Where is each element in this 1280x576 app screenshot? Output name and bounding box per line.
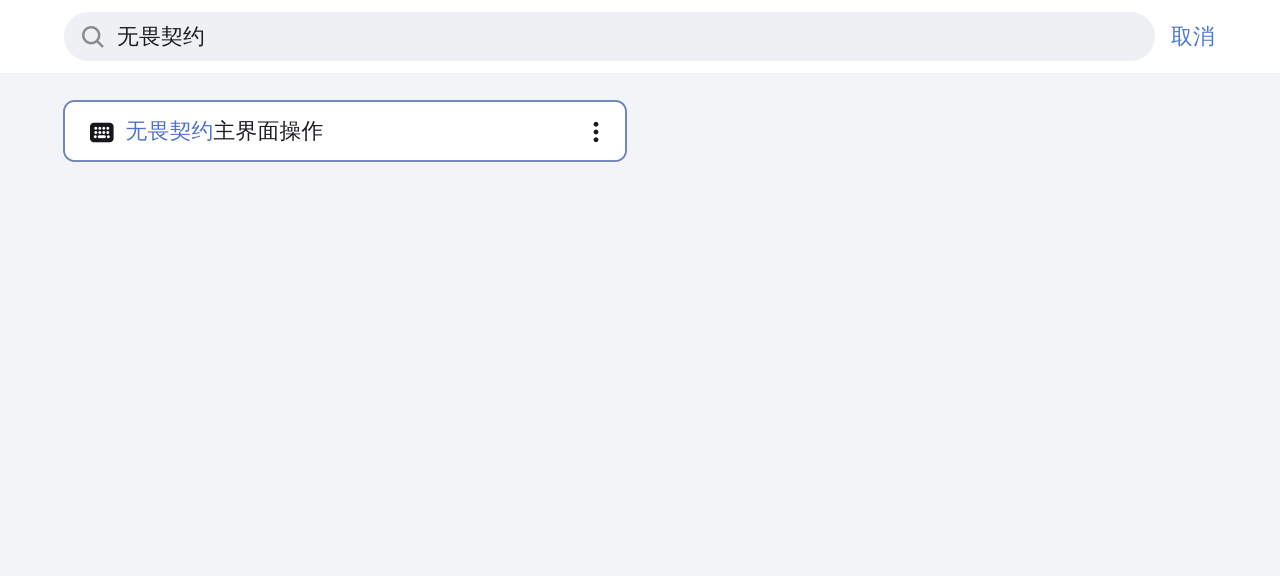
staticText: 无畏契约 [117, 23, 205, 50]
button[interactable]: 无畏契约 [64, 101, 626, 161]
button[interactable]: More options [579, 105, 613, 157]
button[interactable]: 搜索 无畏契约 [64, 12, 1155, 61]
staticText: 无畏契约 [126, 117, 214, 145]
staticText: 取消 [1171, 23, 1215, 50]
button[interactable]: 取消 [1159, 12, 1227, 61]
staticText: 主界面操作 [214, 117, 324, 145]
